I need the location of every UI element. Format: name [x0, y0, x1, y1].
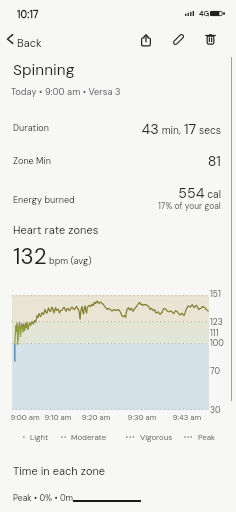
staticText: Heart rate zones [13, 223, 99, 237]
staticText: Duration [13, 122, 49, 134]
staticText: 70 [210, 366, 220, 377]
staticText: Light [30, 432, 49, 442]
button[interactable]: Edit [168, 30, 188, 49]
staticText: 151 [210, 289, 221, 300]
staticText: Energy burned [13, 194, 75, 206]
button[interactable]: Share [136, 30, 156, 49]
staticText: 123 [210, 317, 223, 328]
staticText: Back [17, 36, 42, 50]
staticText: Peak • 0% • 0m [13, 492, 74, 503]
staticText: 81 [0, 152, 221, 171]
staticText: 10:17 [17, 8, 39, 21]
staticText: Vigorous [140, 432, 173, 442]
staticText: Peak [198, 432, 215, 442]
button[interactable]: Delete [200, 30, 220, 49]
staticText: 9:00 am [5, 412, 45, 422]
staticText: 9:10 am [38, 412, 78, 422]
staticText: 30 [210, 405, 221, 416]
button[interactable]: Back [0, 28, 60, 52]
staticText: Moderate [71, 432, 107, 442]
staticText: 111 [210, 328, 219, 339]
staticText: 9:43 am [167, 412, 207, 422]
staticText: 100 [210, 338, 224, 349]
staticText: 9:20 am [76, 412, 116, 422]
staticText: 43 min, 17 secs [0, 120, 221, 139]
staticText: Time in each zone [13, 464, 106, 478]
staticText: Spinning [13, 60, 75, 80]
staticText: 4G [199, 9, 210, 19]
staticText: 554 cal [0, 184, 221, 203]
staticText: 132 bpm (avg) [13, 242, 92, 271]
staticText: Zone Min [13, 155, 51, 167]
staticText: Today • 9:00 am • Versa 3 [11, 86, 121, 98]
staticText: 17% of your goal [158, 201, 221, 212]
staticText: 9:30 am [122, 412, 162, 422]
